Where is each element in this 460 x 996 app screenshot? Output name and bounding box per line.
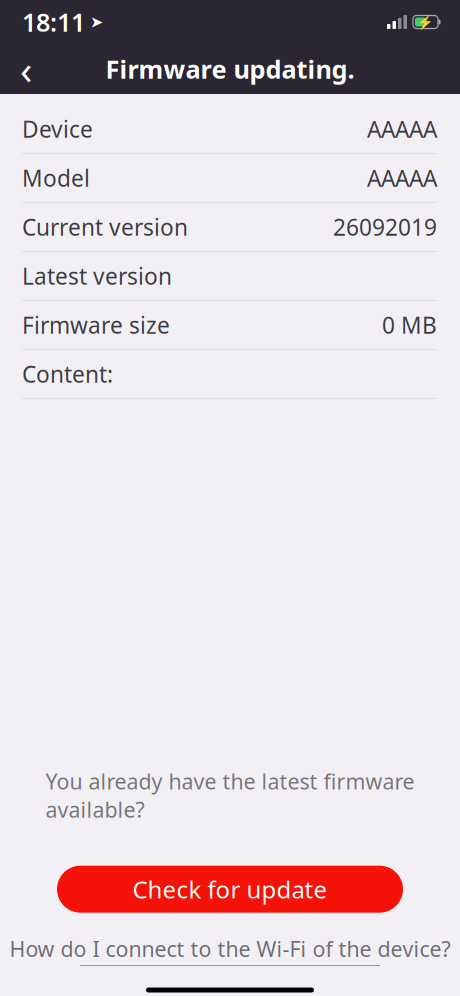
staticText: Content:	[22, 359, 113, 389]
staticText: Model	[22, 163, 90, 193]
staticText: 26092019	[333, 212, 437, 242]
staticText: Current version	[22, 212, 188, 242]
staticText: How do I connect to the Wi-Fi of the dev…	[9, 935, 450, 963]
staticText: Device	[22, 114, 93, 144]
button[interactable]: Check for update	[57, 866, 403, 913]
staticText: ‹	[20, 42, 32, 95]
staticText: AAAAA	[367, 163, 437, 193]
button[interactable]: Back	[0, 46, 52, 92]
staticText: Firmware updating.	[105, 52, 354, 86]
button[interactable]: How do I connect to the Wi-Fi of the dev…	[9, 935, 450, 966]
staticText: ➤	[90, 13, 103, 31]
staticText: You already have the latest firmware ava…	[45, 767, 414, 824]
staticText: 0 MB	[382, 310, 437, 340]
staticText: AAAAA	[367, 114, 437, 144]
staticText: ⚡	[417, 14, 434, 30]
staticText: 18:11	[22, 5, 85, 39]
staticText: Firmware size	[22, 310, 170, 340]
staticText: Latest version	[22, 261, 172, 291]
staticText: Check for update	[132, 873, 327, 905]
